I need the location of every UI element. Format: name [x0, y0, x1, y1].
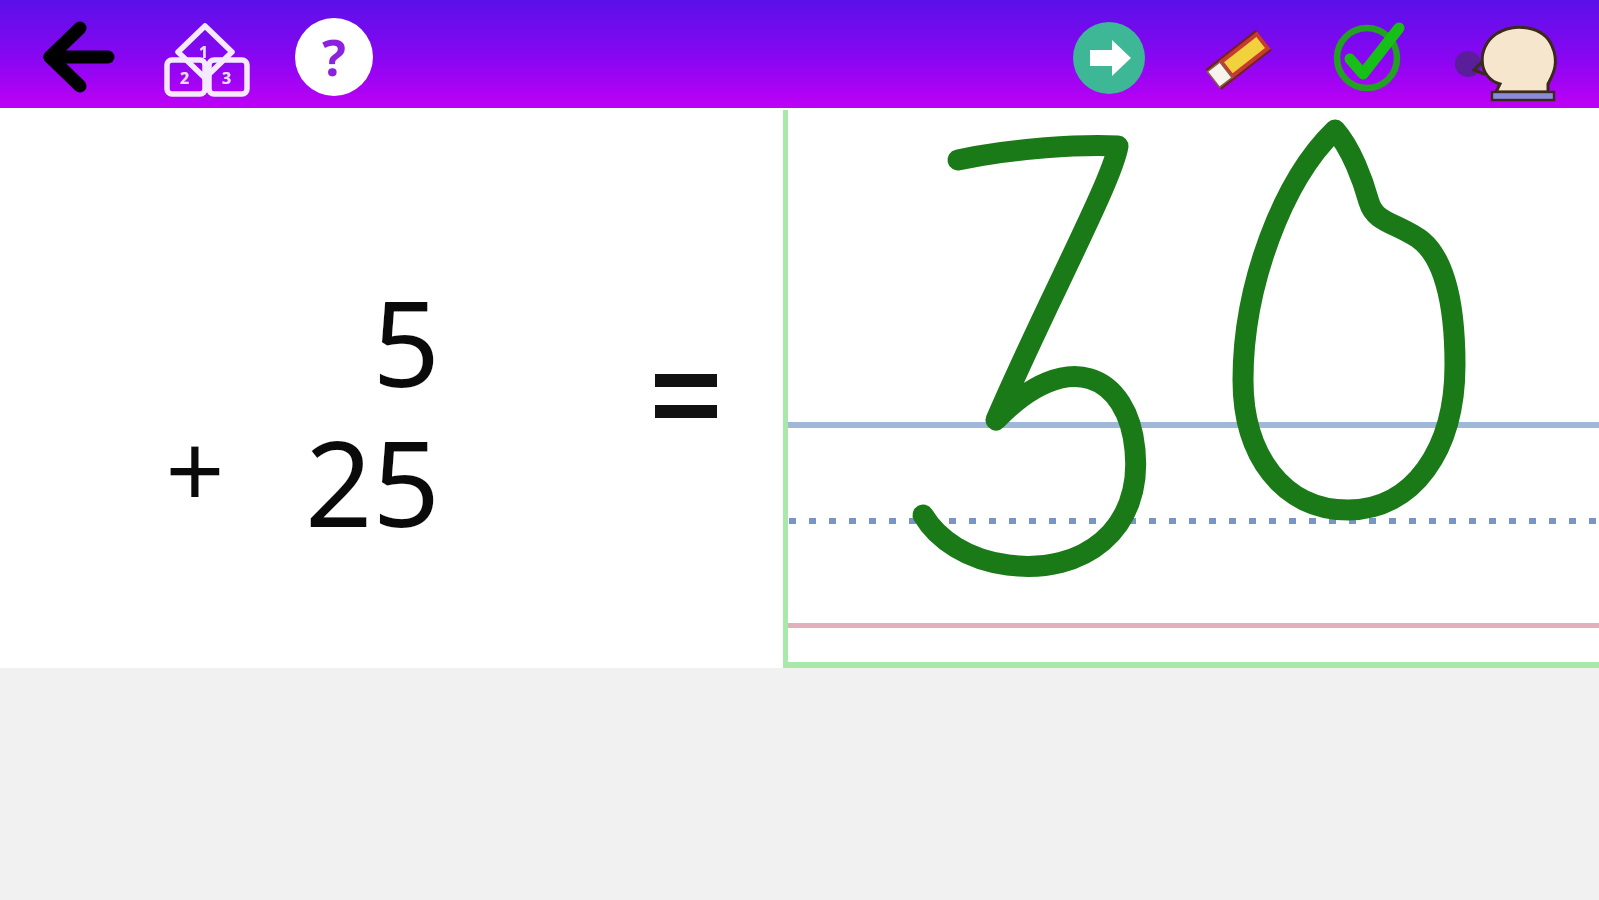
button[interactable]: Number blocks [162, 18, 248, 98]
staticText: 1 [199, 41, 209, 63]
button[interactable]: Back [30, 20, 126, 90]
button[interactable]: Help [292, 15, 376, 99]
button[interactable] [783, 110, 1599, 668]
staticText: 25 [260, 401, 440, 562]
button[interactable]: Read aloud [1452, 18, 1582, 104]
staticText: 2 [180, 67, 190, 89]
staticText: 3 [222, 67, 232, 89]
button[interactable]: Eraser [1192, 18, 1284, 100]
staticText: ? [322, 23, 346, 91]
staticText: + [140, 398, 250, 540]
staticText: 5 [300, 261, 440, 422]
button[interactable]: Next [1070, 19, 1148, 97]
button[interactable]: Check answer [1327, 18, 1413, 100]
